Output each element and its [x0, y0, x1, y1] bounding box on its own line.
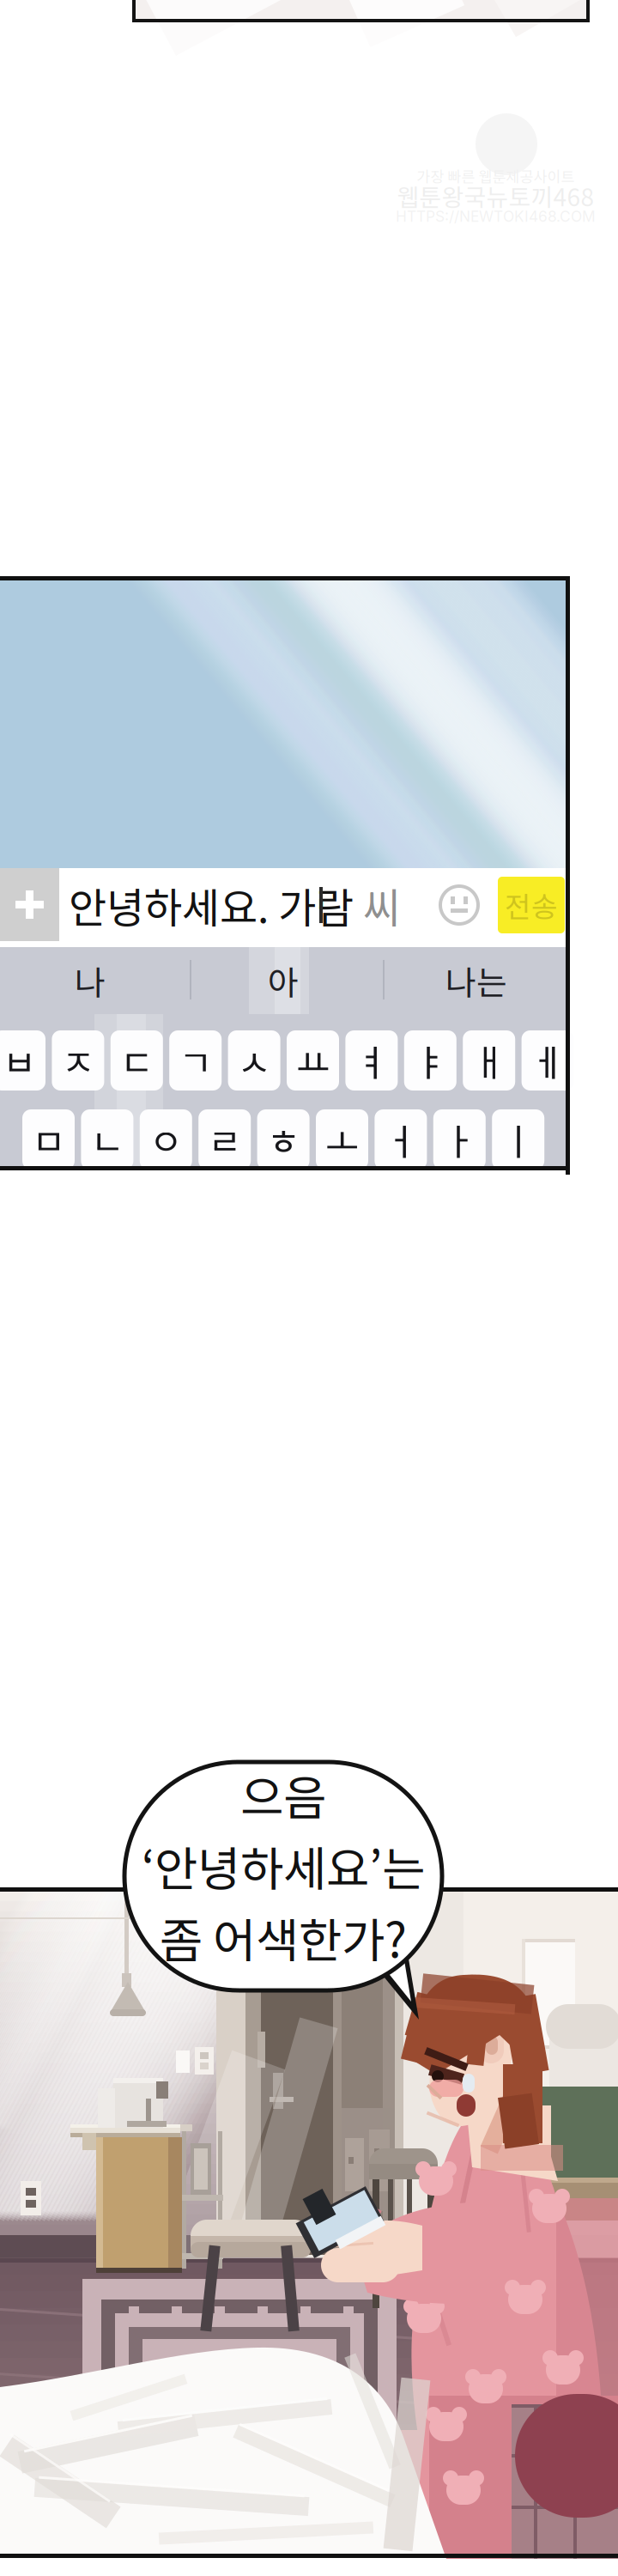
- button[interactable]: 아: [210, 957, 356, 1005]
- staticText: ㅗ: [325, 1113, 359, 1166]
- staticText: 으음: [240, 1761, 326, 1829]
- button[interactable]: Emoji: [440, 886, 478, 924]
- button[interactable]: ㅔ: [522, 1030, 574, 1091]
- button[interactable]: ㅅ: [228, 1030, 280, 1091]
- button[interactable]: ㄹ: [198, 1109, 251, 1170]
- staticText: 가장 빠른 웹툰제공사이트: [417, 165, 575, 187]
- staticText: ㅎ: [267, 1113, 300, 1166]
- staticText: 전송: [505, 884, 558, 926]
- button[interactable]: 나는: [403, 957, 549, 1005]
- button[interactable]: ㅑ: [404, 1030, 456, 1091]
- staticText: ‘안녕하세요’는: [142, 1832, 425, 1900]
- button[interactable]: ㅇ: [140, 1109, 192, 1170]
- button[interactable]: ㅂ: [0, 1030, 45, 1091]
- staticText: 나는: [445, 957, 507, 1005]
- button[interactable]: ㅣ: [492, 1109, 544, 1170]
- staticText: ㅈ: [61, 1034, 95, 1087]
- button[interactable]: ㅈ: [52, 1030, 104, 1091]
- button[interactable]: ㅛ: [287, 1030, 339, 1091]
- staticText: 씨: [354, 875, 401, 935]
- staticText: ㄴ: [90, 1113, 124, 1166]
- button[interactable]: ㅁ: [22, 1109, 75, 1170]
- staticText: HTTPS://NEWTOKI468.COM: [396, 207, 596, 225]
- staticText: 웹툰왕국뉴토끼468: [397, 178, 594, 213]
- button[interactable]: 전송: [498, 877, 565, 933]
- staticText: 아: [268, 957, 299, 1005]
- button[interactable]: ㅏ: [433, 1109, 486, 1170]
- button[interactable]: ㅐ: [463, 1030, 515, 1091]
- staticText: 좀 어색한가?: [160, 1903, 407, 1971]
- staticText: ㅑ: [414, 1034, 447, 1087]
- staticText: 나: [75, 957, 106, 1005]
- button[interactable]: ㄱ: [169, 1030, 222, 1091]
- staticText: ㅛ: [296, 1034, 330, 1087]
- button[interactable]: ㅕ: [345, 1030, 398, 1091]
- staticText: ㅁ: [32, 1113, 65, 1166]
- staticText: ㅐ: [472, 1034, 506, 1087]
- button[interactable]: ㄷ: [111, 1030, 163, 1091]
- staticText: ㅣ: [501, 1113, 535, 1166]
- button[interactable]: Add attachment: [0, 868, 59, 941]
- staticText: ㄷ: [120, 1034, 153, 1087]
- button[interactable]: ㅎ: [257, 1109, 310, 1170]
- staticText: ㅕ: [355, 1034, 388, 1087]
- button[interactable]: ㅗ: [316, 1109, 368, 1170]
- staticText: ㄹ: [208, 1113, 241, 1166]
- staticText: ㅏ: [443, 1113, 476, 1166]
- staticText: ㅇ: [149, 1113, 183, 1166]
- staticText: ㅅ: [237, 1034, 271, 1087]
- staticText: ㄱ: [179, 1034, 212, 1087]
- staticText: ㅂ: [3, 1034, 36, 1087]
- staticText: 안녕하세요. 가람: [69, 875, 354, 935]
- staticText: ㅔ: [531, 1034, 564, 1087]
- button[interactable]: ㅓ: [375, 1109, 427, 1170]
- staticText: ㅓ: [384, 1113, 417, 1166]
- button[interactable]: 나: [17, 957, 163, 1005]
- button[interactable]: ㄴ: [81, 1109, 133, 1170]
